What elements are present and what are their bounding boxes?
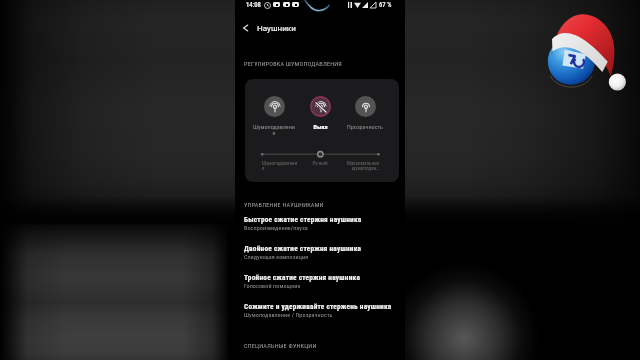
staticText: Наушники bbox=[257, 23, 296, 32]
staticText: Ручной bbox=[312, 160, 328, 166]
staticText: 67 % bbox=[379, 1, 392, 9]
staticText: Быстрое сжатие стержня наушника bbox=[244, 215, 362, 224]
staticText: Сожмите и удерживайте стержень наушника bbox=[244, 302, 392, 311]
staticText: Максимальное шумоподав… bbox=[343, 160, 379, 172]
button[interactable]: Прозрачность bbox=[343, 96, 387, 130]
button[interactable]: Двойное сжатие стержня наушника bbox=[235, 244, 405, 272]
button[interactable]: Тройное сжатие стержня наушника bbox=[235, 273, 405, 301]
staticText: РЕГУЛИРОВКА ШУМОПОДАВЛЕНИЯ bbox=[244, 60, 342, 67]
staticText: 14:08 bbox=[246, 1, 261, 9]
staticText: Тройное сжатие стержня наушника bbox=[244, 273, 361, 282]
staticText: Шумоподавление bbox=[252, 123, 296, 136]
button[interactable]: Шумоподавление bbox=[252, 96, 296, 136]
staticText: Воспроизведение/пауза bbox=[244, 224, 308, 231]
button[interactable]: Сожмите и удерживайте стержень наушника bbox=[235, 302, 405, 330]
button[interactable]: Back bbox=[235, 17, 256, 38]
staticText: Выкл bbox=[313, 123, 328, 130]
staticText: Следующая композиция bbox=[244, 253, 309, 260]
button[interactable]: Выкл bbox=[298, 96, 342, 130]
staticText: Шумоподавление bbox=[262, 160, 298, 172]
staticText: Голосовой помощник bbox=[244, 282, 301, 289]
staticText: Двойное сжатие стержня наушника bbox=[244, 244, 362, 253]
staticText: СПЕЦИАЛЬНЫЕ ФУНКЦИИ bbox=[244, 342, 317, 349]
staticText: Шумоподавление / Прозрачность bbox=[244, 311, 333, 318]
button[interactable]: Быстрое сжатие стержня наушника bbox=[235, 215, 405, 243]
staticText: УПРАВЛЕНИЕ НАУШНИКАМИ bbox=[244, 201, 324, 208]
staticText: Прозрачность bbox=[347, 123, 383, 130]
